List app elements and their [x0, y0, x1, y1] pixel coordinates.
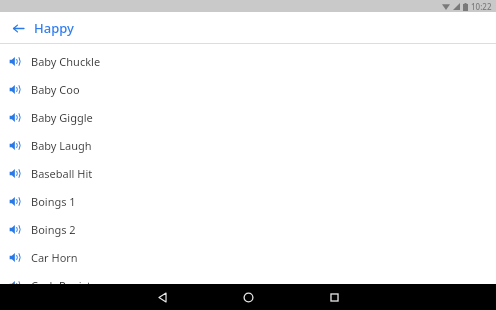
staticText: Happy: [34, 19, 74, 37]
button[interactable]: Baby Laugh: [0, 131, 496, 159]
staticText: Baby Giggle: [31, 110, 93, 125]
button[interactable]: Happy: [34, 19, 74, 37]
button[interactable]: Navigate up: [8, 18, 28, 38]
staticText: Boings 1: [31, 194, 76, 209]
button[interactable]: Car Horn: [0, 243, 496, 271]
button[interactable]: Baby Chuckle: [0, 47, 496, 75]
button[interactable]: Baby Giggle: [0, 103, 496, 131]
staticText: Baseball Hit: [31, 166, 93, 181]
button[interactable]: Cat Meow: [0, 299, 496, 310]
button[interactable]: Boings 2: [0, 215, 496, 243]
staticText: Car Horn: [31, 250, 78, 265]
button[interactable]: Cash Register: [0, 271, 496, 299]
staticText: Baby Coo: [31, 82, 80, 97]
staticText: Baby Chuckle: [31, 54, 101, 69]
staticText: Boings 2: [31, 222, 76, 237]
button[interactable]: Baby Coo: [0, 75, 496, 103]
button[interactable]: Boings 1: [0, 187, 496, 215]
button[interactable]: Back: [119, 284, 205, 310]
staticText: Cash Register: [31, 278, 102, 293]
staticText: 10:22: [471, 1, 492, 12]
button[interactable]: Baseball Hit: [0, 159, 496, 187]
staticText: Baby Laugh: [31, 138, 92, 153]
button[interactable]: Home: [205, 284, 291, 310]
button[interactable]: Recent apps: [291, 284, 377, 310]
